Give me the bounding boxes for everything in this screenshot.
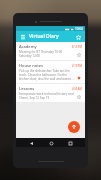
button[interactable]: Back [27, 139, 35, 147]
button[interactable]: House notes [16, 61, 85, 83]
staticText: 8:13 PM [72, 45, 82, 49]
staticText: House notes [19, 63, 72, 68]
staticText: 4:10 PM [72, 64, 82, 68]
button[interactable]: Add new entry [68, 121, 80, 133]
button[interactable]: Toggle favourite [76, 94, 82, 100]
button[interactable]: Favourites [74, 33, 82, 41]
button[interactable]: Open navigation menu [19, 33, 26, 40]
staticText: Virtual Diary [29, 33, 59, 40]
button[interactable]: Lessons [16, 84, 85, 102]
staticText: Meeting for BT Thursday 10:00 Saturday 1… [19, 50, 74, 58]
button[interactable]: Academy [16, 42, 85, 60]
button[interactable]: Toggle favourite [76, 52, 82, 58]
staticText: 10:04 [75, 27, 83, 31]
button[interactable]: Recent apps [66, 139, 74, 147]
staticText: Lessons [19, 86, 72, 91]
staticText: 4:05 AM [72, 87, 82, 91]
staticText: Academy [19, 44, 72, 49]
button[interactable]: Toggle favourite [76, 75, 82, 81]
staticText: Pick up the dishwasher. Take out the tra… [19, 69, 74, 81]
staticText: Incorporate work technical history and C… [19, 92, 74, 100]
button[interactable]: Home [47, 139, 55, 147]
